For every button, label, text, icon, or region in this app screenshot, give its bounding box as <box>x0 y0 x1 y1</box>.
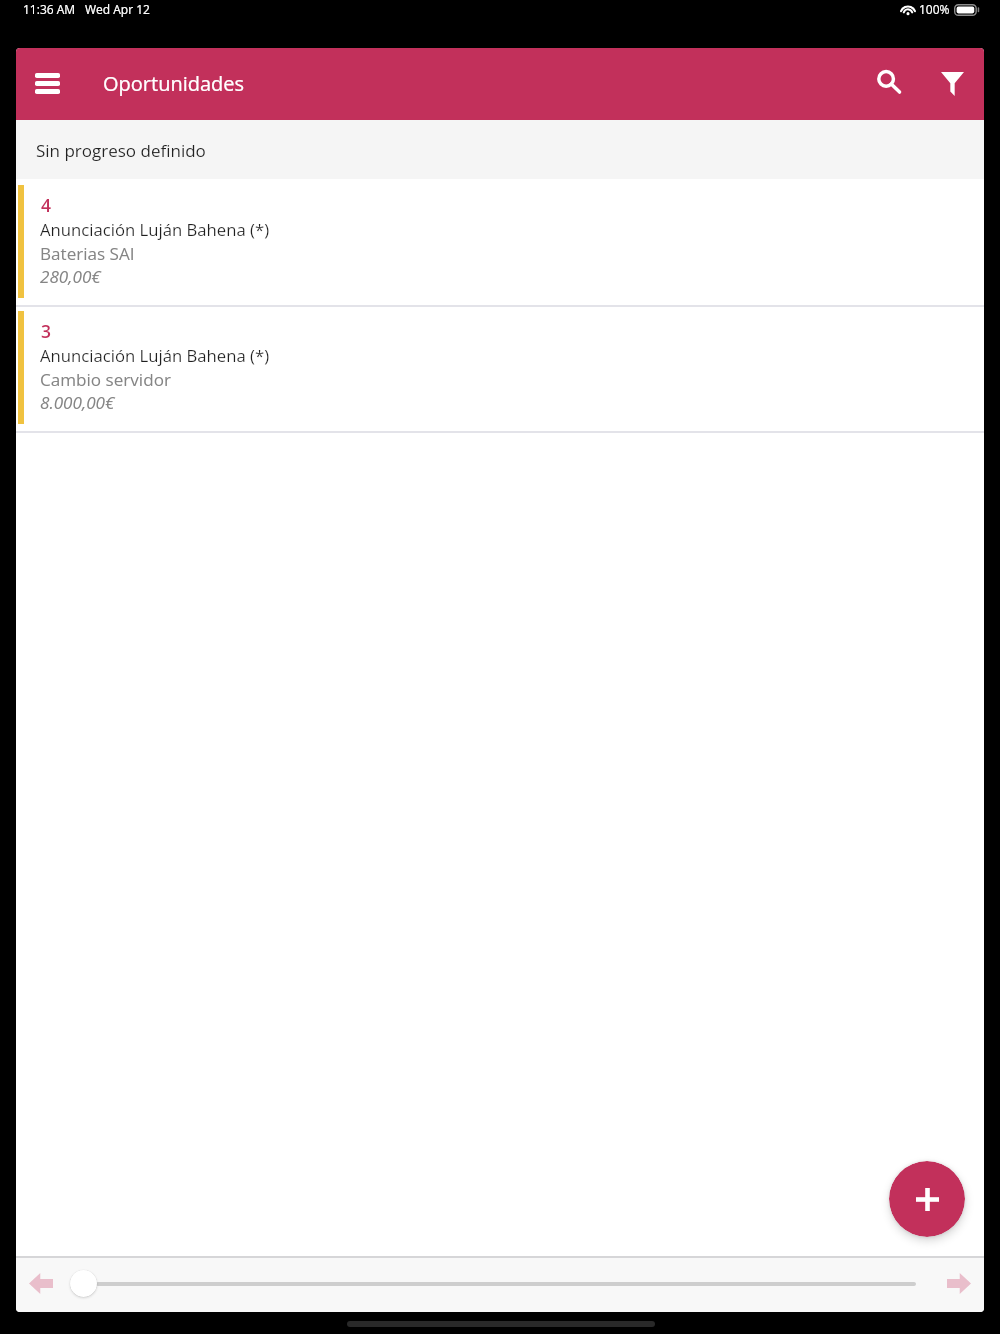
staticText: Oportunidades <box>103 70 245 97</box>
button[interactable]: Add opportunity <box>889 1161 965 1237</box>
button[interactable]: Next page <box>937 1261 981 1305</box>
button[interactable]: Open navigation menu <box>17 54 78 112</box>
button[interactable]: Previous page <box>19 1261 63 1305</box>
button[interactable]: Filter <box>924 56 980 112</box>
staticText: Wed Apr 12 <box>85 1 150 17</box>
button[interactable]: Search <box>861 54 917 110</box>
staticText: 280,00€ <box>40 265 101 288</box>
staticText: 100% <box>919 1 950 17</box>
button[interactable]: Scroll position <box>70 1270 97 1297</box>
staticText: 11:36 AM <box>23 1 76 17</box>
button[interactable]: 4 <box>16 179 984 305</box>
staticText: Baterias SAI <box>40 242 135 265</box>
staticText: Cambio servidor <box>40 368 171 391</box>
staticText: 3 <box>41 319 52 343</box>
staticText: Sin progreso definido <box>36 139 206 162</box>
button[interactable]: 3 <box>16 305 984 431</box>
staticText: Anunciación Luján Bahena (*) <box>40 344 270 367</box>
staticText: 4 <box>41 193 52 217</box>
staticText: Anunciación Luján Bahena (*) <box>40 218 270 241</box>
staticText: 8.000,00€ <box>40 391 115 414</box>
